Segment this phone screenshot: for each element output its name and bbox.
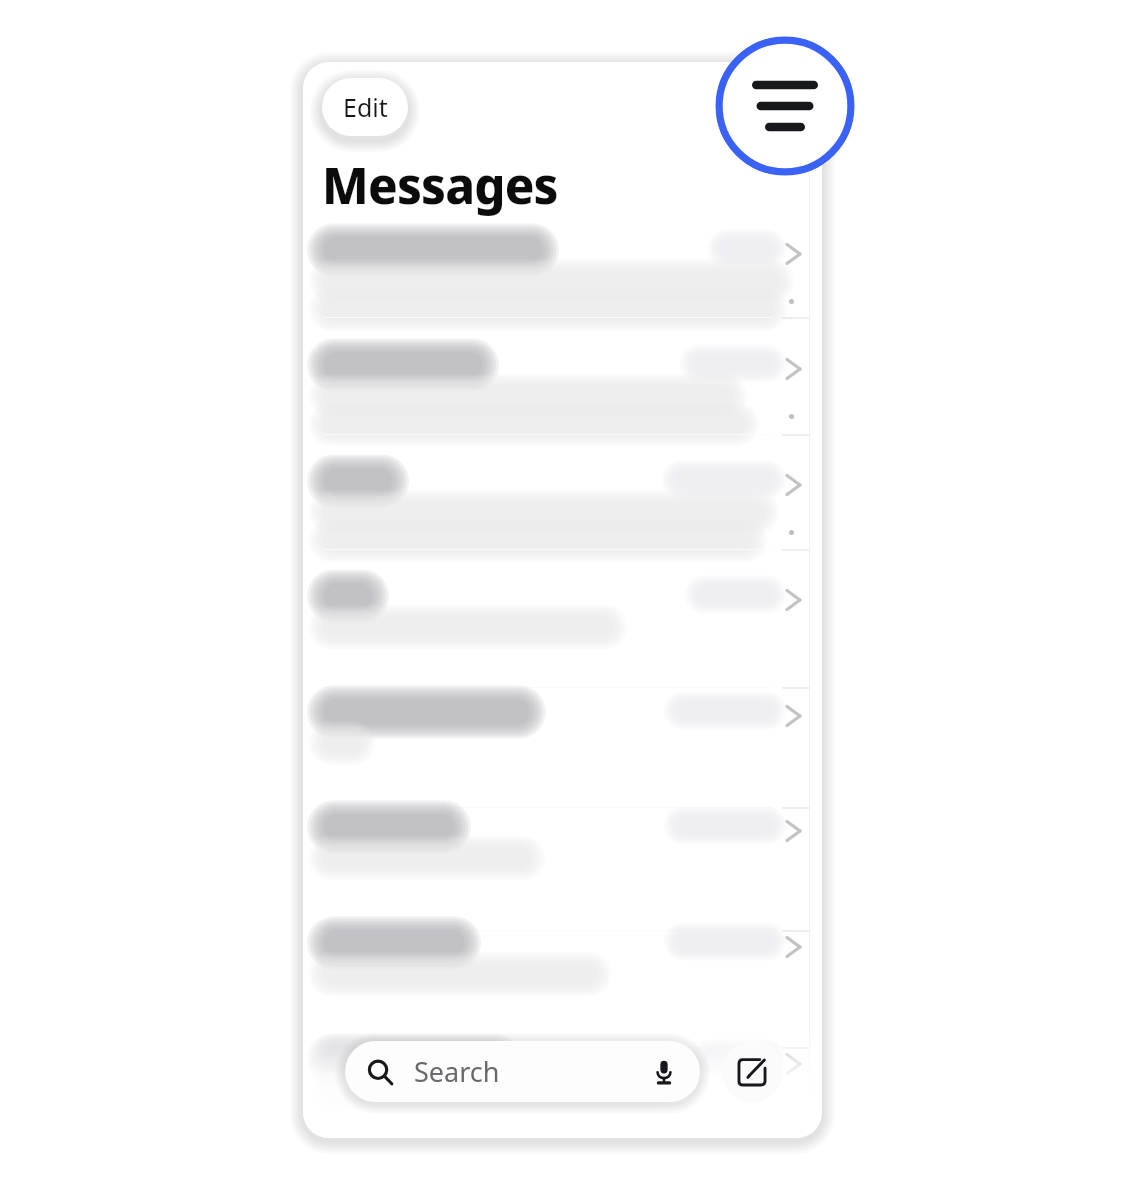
button[interactable]: [303, 902, 822, 1047]
other: Voice search: [650, 1058, 678, 1086]
staticText: Edit: [343, 90, 388, 124]
button[interactable]: [303, 324, 822, 434]
staticText: Messages: [322, 152, 558, 219]
button[interactable]: [303, 209, 822, 317]
button[interactable]: Search: [345, 1041, 700, 1102]
staticText: Search: [414, 1053, 500, 1090]
button[interactable]: Edit: [322, 78, 408, 136]
button[interactable]: [303, 1019, 822, 1099]
button[interactable]: [303, 671, 822, 807]
button[interactable]: [303, 786, 822, 930]
button[interactable]: [303, 440, 822, 549]
button[interactable]: Menu: [715, 36, 855, 176]
button[interactable]: Compose new message: [722, 1041, 783, 1102]
button[interactable]: [303, 555, 822, 687]
